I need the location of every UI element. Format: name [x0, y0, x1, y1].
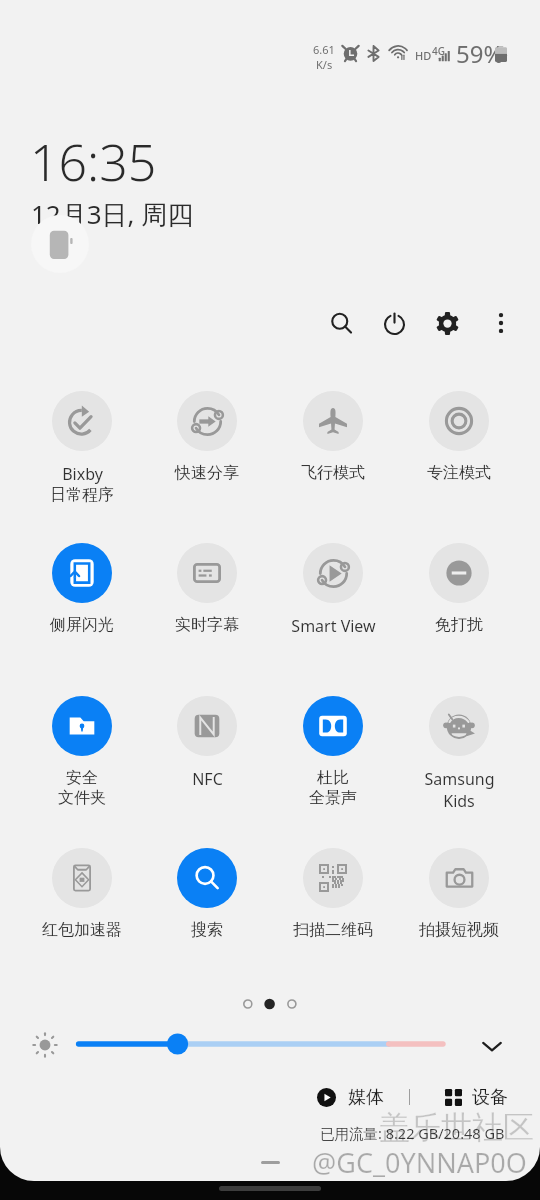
- button[interactable]: Smart View: [271, 539, 395, 637]
- staticText: 杜比: [317, 768, 349, 788]
- staticText: 12月3日, 周四: [31, 196, 194, 232]
- staticText: 设备: [472, 1086, 508, 1109]
- button[interactable]: 安全: [20, 692, 144, 808]
- button[interactable]: NFC: [145, 692, 269, 790]
- button[interactable]: Samsung: [397, 692, 521, 812]
- staticText: Kids: [443, 790, 475, 812]
- staticText: HD: [415, 48, 432, 63]
- staticText: 免打扰: [435, 615, 483, 635]
- button[interactable]: Search: [317, 299, 365, 347]
- staticText: 4G: [432, 44, 445, 58]
- staticText: 59%: [456, 37, 504, 70]
- button[interactable]: 侧屏闪光: [20, 539, 144, 635]
- button[interactable]: 拍摄短视频: [397, 844, 521, 940]
- button[interactable]: Brightness: [70, 1029, 455, 1059]
- staticText: 6.61: [313, 42, 335, 57]
- button[interactable]: More options: [477, 299, 525, 347]
- staticText: 拍摄短视频: [419, 920, 499, 940]
- button[interactable]: 媒体: [315, 1086, 386, 1109]
- button[interactable]: 扫描二维码: [271, 844, 395, 940]
- staticText: 已用流量: 8.22 GB/20.48 GB: [320, 1123, 505, 1143]
- button[interactable]: 实时字幕: [145, 539, 269, 635]
- staticText: 盖乐世社区: [379, 1108, 534, 1147]
- staticText: K/s: [316, 57, 333, 72]
- staticText: 快速分享: [175, 463, 239, 483]
- button[interactable]: 专注模式: [397, 387, 521, 483]
- staticText: 安全: [66, 768, 98, 788]
- button[interactable]: 红包加速器: [20, 844, 144, 940]
- button[interactable]: 杜比: [271, 692, 395, 808]
- staticText: Bixby: [62, 463, 103, 485]
- staticText: Smart View: [291, 615, 376, 637]
- button[interactable]: Bixby: [20, 387, 144, 505]
- staticText: 飞行模式: [301, 463, 365, 483]
- button[interactable]: Expand: [472, 1026, 512, 1066]
- staticText: 媒体: [348, 1086, 384, 1109]
- staticText: 侧屏闪光: [50, 615, 114, 635]
- staticText: 日常程序: [50, 485, 114, 505]
- button[interactable]: 快速分享: [145, 387, 269, 483]
- staticText: 搜索: [191, 920, 223, 940]
- staticText: Samsung: [424, 768, 495, 790]
- staticText: 专注模式: [427, 463, 491, 483]
- staticText: 扫描二维码: [293, 920, 373, 940]
- staticText: 实时字幕: [175, 615, 239, 635]
- button[interactable]: Auto brightness: [30, 1030, 59, 1059]
- staticText: 红包加速器: [42, 920, 122, 940]
- staticText: 全景声: [309, 788, 357, 808]
- staticText: 16:35: [30, 128, 157, 196]
- button[interactable]: Settings: [423, 299, 471, 347]
- button[interactable]: Notification: [31, 215, 89, 273]
- button[interactable]: 飞行模式: [271, 387, 395, 483]
- button[interactable]: 搜索: [145, 844, 269, 940]
- staticText: NFC: [192, 768, 223, 790]
- staticText: 文件夹: [58, 788, 106, 808]
- staticText: @GC_0YNNAP0O: [312, 1144, 527, 1181]
- button[interactable]: Power: [370, 299, 418, 347]
- button[interactable]: 设备: [443, 1086, 510, 1109]
- button[interactable]: 免打扰: [397, 539, 521, 635]
